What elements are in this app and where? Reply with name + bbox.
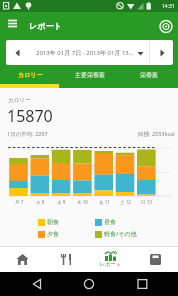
button[interactable]: 主要栄養素 (60, 65, 119, 88)
staticText: 2013年 01月 7日 - 2013年 01月 13... (36, 49, 134, 57)
button[interactable] (4, 14, 24, 38)
staticText: 火 8 (36, 199, 45, 205)
staticText: 軽食/その他 (104, 230, 137, 238)
staticText: カロリー (8, 97, 31, 104)
staticText: 栄養素 (140, 71, 158, 79)
staticText: 土 12 (120, 199, 131, 205)
button[interactable]: 2013年 01月 7日 - 2013年 01月 13... (30, 40, 149, 65)
button[interactable] (156, 15, 172, 37)
button[interactable]: カロリー (0, 65, 60, 88)
staticText: 金 11 (99, 199, 110, 205)
button[interactable] (6, 40, 30, 65)
staticText: 夕食 (47, 230, 59, 238)
staticText: レポート (29, 21, 62, 31)
button[interactable] (150, 40, 173, 65)
button[interactable]: レポート (88, 247, 133, 272)
staticText: 主要栄養素 (75, 71, 105, 79)
button[interactable]: 栄養素 (119, 65, 178, 88)
button[interactable] (119, 272, 178, 296)
button[interactable] (0, 247, 44, 272)
staticText: カロリー (18, 71, 43, 79)
button[interactable] (44, 247, 88, 272)
staticText: レポート (99, 261, 122, 268)
staticText: 目標: 2553kcal (138, 130, 175, 138)
staticText: 朝食 (47, 218, 59, 226)
staticText: 日 13 (141, 199, 152, 205)
staticText: 14:31 (162, 3, 175, 10)
staticText: 木 10 (77, 199, 88, 205)
button[interactable] (60, 272, 119, 296)
staticText: 15870 (7, 105, 53, 127)
staticText: 1日の平均: 2267 (7, 130, 48, 138)
staticText: 水 9 (57, 199, 66, 205)
staticText: 月 7 (15, 199, 24, 205)
button[interactable] (133, 247, 178, 272)
button[interactable] (0, 272, 60, 296)
staticText: 昼食 (104, 218, 116, 226)
